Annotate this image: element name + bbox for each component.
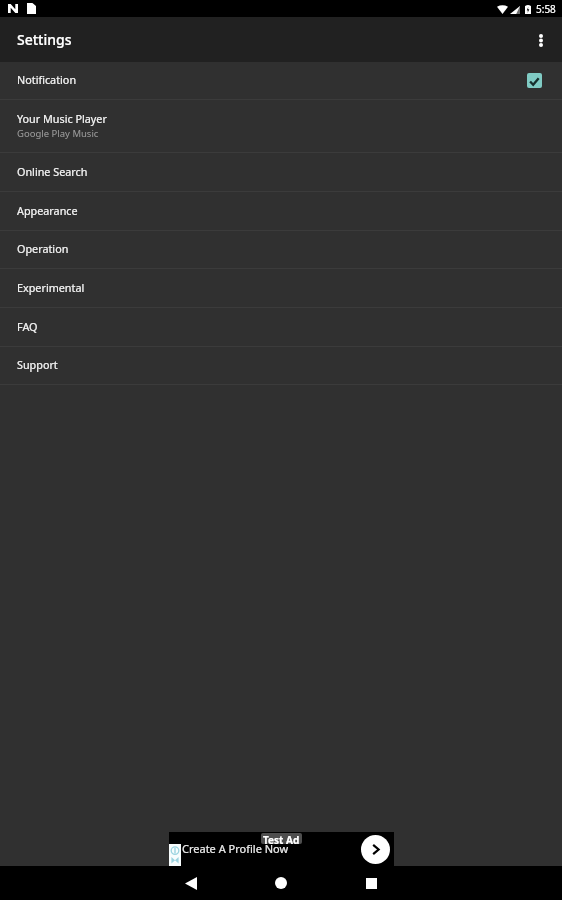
staticText: Test Ad bbox=[263, 833, 300, 844]
staticText: Appearance bbox=[17, 203, 78, 218]
button[interactable]: Back bbox=[168, 866, 214, 900]
button[interactable]: Recents bbox=[348, 866, 394, 900]
staticText: Notification bbox=[17, 72, 77, 87]
staticText: Support bbox=[17, 357, 58, 372]
staticText: Operation bbox=[17, 241, 69, 256]
button[interactable]: Notification bbox=[0, 62, 562, 99]
staticText: Experimental bbox=[17, 280, 85, 295]
staticText: Google Play Music bbox=[17, 127, 99, 140]
staticText: FAQ bbox=[17, 319, 38, 334]
staticText: Settings bbox=[17, 30, 72, 49]
button[interactable]: More options bbox=[520, 17, 562, 62]
button[interactable]: Support bbox=[0, 347, 562, 384]
button[interactable]: Experimental bbox=[0, 269, 562, 307]
button[interactable]: Appearance bbox=[0, 192, 562, 230]
staticText: Online Search bbox=[17, 164, 88, 179]
staticText: Create A Profile Now bbox=[182, 841, 289, 856]
button[interactable]: Home bbox=[258, 866, 304, 900]
button[interactable]: Online Search bbox=[0, 153, 562, 191]
other: Ad choices bbox=[169, 844, 181, 866]
button[interactable]: Your Music Player bbox=[0, 100, 562, 152]
staticText: 5:58 bbox=[536, 2, 556, 16]
other: Open ad bbox=[361, 835, 390, 864]
button[interactable]: FAQ bbox=[0, 308, 562, 346]
button[interactable]: Create A Profile Now bbox=[169, 832, 394, 866]
button[interactable]: Operation bbox=[0, 231, 562, 268]
staticText: Your Music Player bbox=[17, 111, 107, 126]
